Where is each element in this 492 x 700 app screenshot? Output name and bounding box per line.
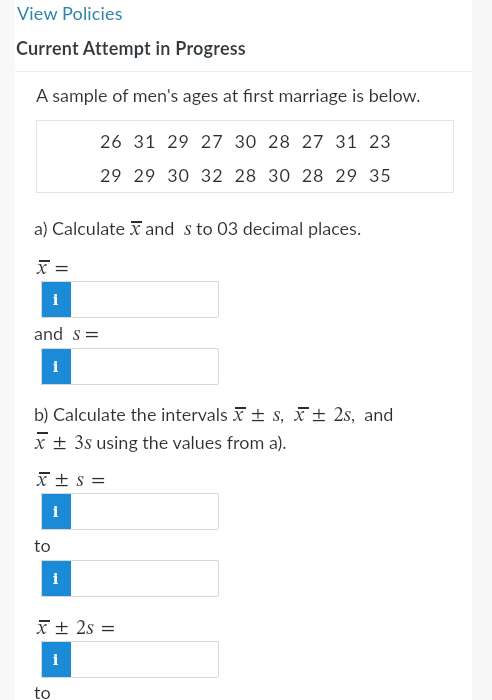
staticText: 𝑥 =: [36, 259, 69, 279]
staticText: 29 29 30 32 28 30 28 29 35: [100, 164, 392, 186]
button[interactable]: View Policies: [17, 2, 123, 24]
button[interactable]: Information: [41, 281, 219, 318]
staticText: 𝑥 ± 𝑠 =: [36, 471, 106, 491]
button[interactable]: Information: [41, 641, 219, 678]
staticText: b) Calculate the intervals 𝑥 ± 𝑠, 𝑥 ± 2𝑠…: [34, 403, 394, 453]
button[interactable]: Information: [41, 560, 219, 597]
staticText: to: [34, 681, 51, 700]
other: Information: [41, 641, 71, 678]
staticText: Current Attempt in Progress: [16, 37, 246, 59]
other: Information: [41, 493, 71, 530]
other: Information: [41, 281, 71, 318]
staticText: i: [53, 652, 59, 668]
staticText: i: [53, 292, 59, 308]
staticText: 26 31 29 27 30 28 27 31 23: [100, 130, 392, 152]
button[interactable]: Information: [41, 493, 219, 530]
other: Information: [41, 348, 71, 385]
staticText: i: [53, 504, 59, 520]
staticText: A sample of men's ages at first marriage…: [36, 84, 421, 106]
staticText: a) Calculate 𝑥 and 𝑠 to 03 decimal place…: [34, 217, 362, 240]
other: Information: [41, 560, 71, 597]
staticText: and 𝑠 =: [34, 322, 100, 345]
button[interactable]: Information: [41, 348, 219, 385]
staticText: i: [53, 571, 59, 587]
staticText: i: [53, 359, 59, 375]
staticText: 𝑥 ± 2𝑠 =: [36, 619, 116, 639]
staticText: to: [34, 534, 51, 556]
